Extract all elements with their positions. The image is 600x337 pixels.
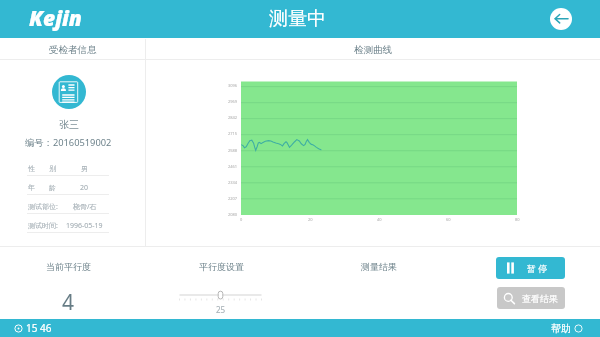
staticText: 60: [446, 217, 451, 222]
staticText: 2842: [228, 115, 238, 120]
staticText: 80: [515, 217, 520, 222]
staticText: 测量中: [269, 7, 326, 31]
staticText: 张三: [59, 118, 79, 131]
staticText: 测试时间:: [28, 221, 58, 231]
staticText: 25: [216, 304, 226, 315]
button[interactable]: 查看结果: [497, 287, 565, 309]
staticText: 0: [240, 217, 243, 222]
staticText: 2588: [228, 148, 238, 153]
staticText: 40: [377, 217, 382, 222]
staticText: 4: [62, 288, 75, 317]
staticText: 15 46: [26, 321, 52, 335]
staticText: 平行度设置: [199, 261, 244, 272]
staticText: 2461: [228, 164, 238, 169]
staticText: 测量结果: [361, 261, 397, 272]
staticText: 年 龄: [28, 183, 56, 193]
staticText: 2334: [228, 180, 238, 185]
other: Help: [574, 324, 583, 333]
button[interactable]: 帮助: [551, 322, 583, 335]
staticText: 2715: [228, 131, 238, 136]
staticText: 性 别: [28, 164, 56, 174]
button[interactable]: Back: [550, 8, 572, 30]
staticText: 2207: [228, 196, 238, 201]
staticText: 20: [308, 217, 313, 222]
button[interactable]: 暂 停: [496, 257, 565, 279]
staticText: 男: [81, 164, 88, 173]
staticText: 检测曲线: [354, 44, 392, 56]
staticText: 受检者信息: [49, 44, 97, 56]
staticText: 2969: [228, 99, 238, 104]
staticText: 暂 停: [527, 262, 548, 274]
staticText: 测试部位:: [28, 202, 58, 212]
staticText: 20: [80, 183, 89, 193]
staticText: 查看结果: [522, 293, 558, 304]
staticText: 3096: [228, 83, 238, 88]
button[interactable]: Parallelism slider: [171, 288, 270, 304]
staticText: 2080: [228, 212, 238, 217]
staticText: Kejin: [29, 4, 82, 33]
staticText: 1996-05-19: [66, 221, 103, 231]
staticText: 当前平行度: [46, 261, 91, 272]
staticText: 桡骨/右: [73, 202, 97, 212]
staticText: 帮助: [551, 322, 571, 335]
staticText: 编号：20160519002: [25, 136, 112, 149]
